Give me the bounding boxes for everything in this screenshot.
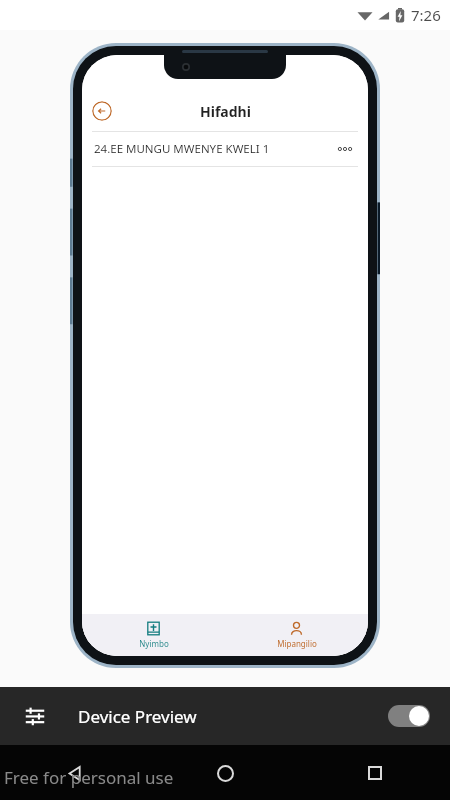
staticText: Mipangilio bbox=[277, 638, 317, 649]
staticText: 7:26 bbox=[411, 5, 441, 25]
staticText: Free for personal use bbox=[4, 766, 174, 789]
button[interactable]: Home bbox=[208, 756, 242, 790]
staticText: 24.EE MUNGU MWENYE KWELI 1 bbox=[94, 141, 334, 157]
button[interactable]: Back bbox=[58, 756, 92, 790]
button[interactable]: Settings bbox=[20, 701, 50, 731]
staticText: Device Preview bbox=[78, 705, 197, 728]
button[interactable]: Back bbox=[92, 101, 112, 121]
button[interactable]: Nyimbo bbox=[82, 614, 225, 656]
button[interactable]: Recents bbox=[358, 756, 392, 790]
button[interactable]: 24.EE MUNGU MWENYE KWELI 1 bbox=[82, 132, 368, 166]
button[interactable]: Mipangilio bbox=[225, 614, 368, 656]
staticText: Hifadhi bbox=[200, 102, 251, 121]
button[interactable]: Toggle device preview bbox=[388, 705, 430, 727]
staticText: Nyimbo bbox=[139, 638, 169, 649]
button[interactable]: More options bbox=[334, 138, 356, 160]
